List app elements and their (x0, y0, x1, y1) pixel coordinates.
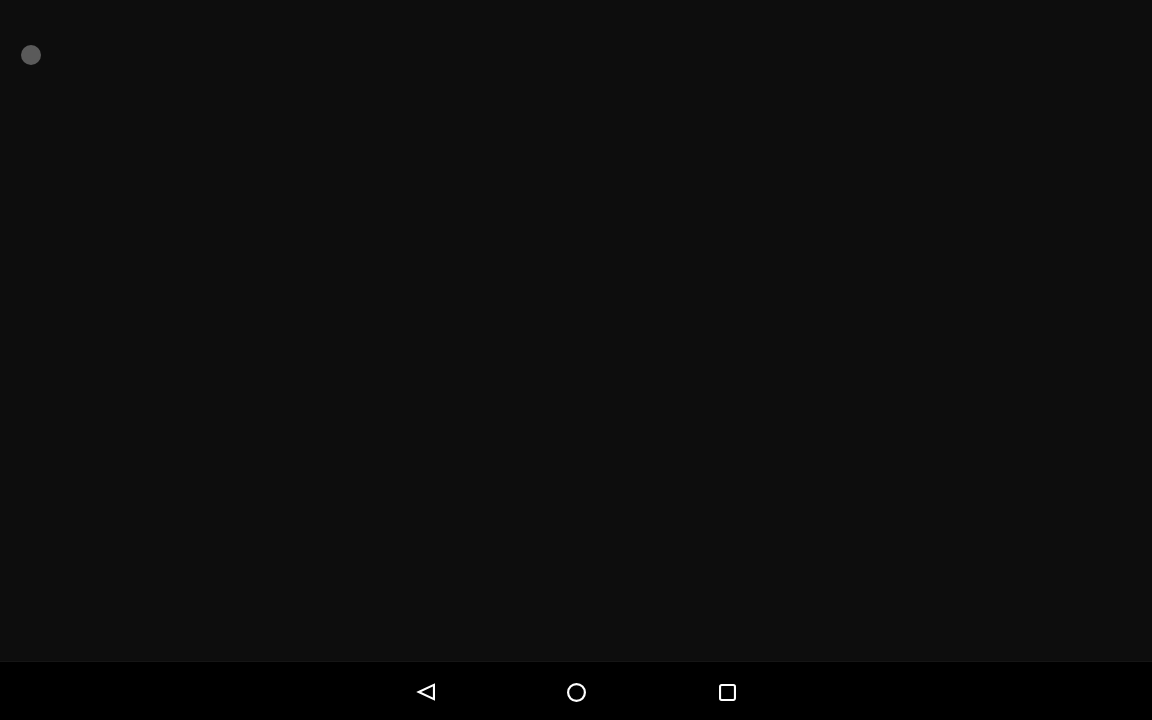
button[interactable]: Home (552, 668, 600, 716)
button[interactable]: Loading (21, 45, 41, 65)
button[interactable]: Recent apps (703, 668, 751, 716)
button[interactable]: Back (402, 668, 450, 716)
